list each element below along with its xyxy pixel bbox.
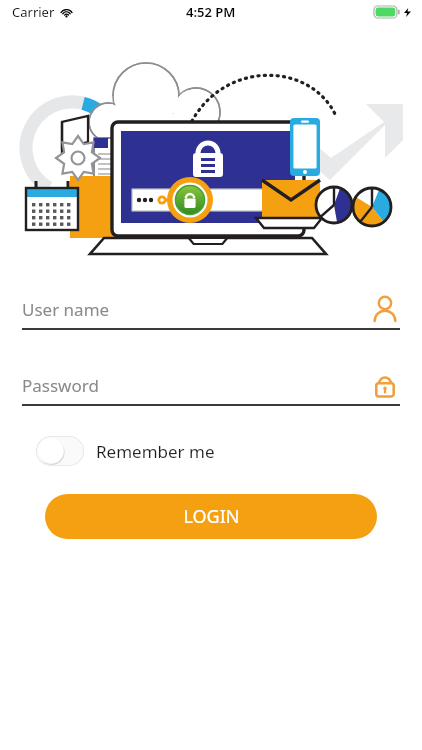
staticText: User name [22,298,110,321]
staticText: LOGIN [183,504,240,529]
button[interactable]: Remember me [36,436,215,466]
staticText: Password [22,374,99,397]
staticText: Remember me [96,440,215,463]
other: Password [370,370,400,400]
staticText: Carrier [12,3,55,21]
button[interactable]: Password [22,364,400,406]
button[interactable]: LOGIN [45,494,377,539]
button[interactable]: User name [22,288,400,330]
staticText: 4:52 PM [186,3,236,21]
other: User name [370,294,400,324]
